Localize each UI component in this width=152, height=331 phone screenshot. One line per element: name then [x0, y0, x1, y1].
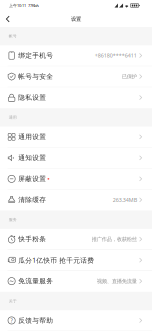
staticText: 263.34MB [113, 196, 137, 203]
staticText: 通用 [9, 115, 17, 120]
staticText: 清除缓存 [18, 196, 46, 204]
staticText: 关于 [9, 299, 17, 303]
button[interactable]: ? [0, 310, 152, 331]
staticText: 帐号与安全 [18, 72, 53, 81]
staticText: 帐号 [9, 34, 17, 39]
button[interactable]: 快手粉条 [0, 229, 152, 250]
button[interactable]: 瓜分1亿快币 抢千元话费 [0, 250, 152, 271]
button[interactable]: 隐私设置 [0, 87, 152, 108]
staticText: 绑定手机号 [18, 51, 53, 60]
staticText: +86180****6411 [95, 52, 137, 59]
staticText: 通知设置 [18, 154, 46, 162]
staticText: 推广作品，收获粉丝 [92, 236, 137, 242]
staticText: 瓜分1亿快币 抢千元话费 [18, 256, 94, 265]
staticText: 反馈与帮助 [18, 316, 53, 325]
button[interactable]: Back [0, 11, 20, 27]
button[interactable]: 屏蔽设置 [0, 169, 152, 190]
staticText: 屏蔽设置 [18, 175, 46, 183]
button[interactable]: 通用设置 [0, 127, 152, 148]
staticText: 免流量服务 [18, 277, 53, 285]
button[interactable]: 清除缓存 [0, 190, 152, 211]
button[interactable]: 免流量服务 [0, 271, 152, 292]
staticText: 快手粉条 [18, 235, 46, 243]
staticText: 隐私设置 [18, 93, 46, 102]
staticText: ? [11, 317, 13, 324]
button[interactable]: 绑定手机号 [0, 45, 152, 66]
staticText: 通用设置 [18, 133, 46, 141]
staticText: 设置 [71, 16, 81, 22]
staticText: 服务 [9, 217, 17, 222]
staticText: 上午10:11 77Kb/s [9, 3, 39, 8]
staticText: 已保护 [122, 73, 137, 80]
button[interactable]: 帐号与安全 [0, 66, 152, 87]
button[interactable]: 通知设置 [0, 148, 152, 169]
staticText: 视频、直播免流量 [97, 278, 137, 284]
